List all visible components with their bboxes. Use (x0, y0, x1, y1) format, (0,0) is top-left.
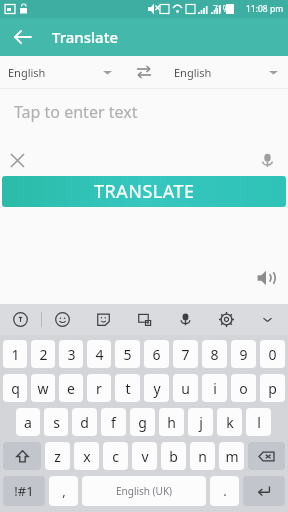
staticText: 7 (181, 345, 190, 364)
button[interactable]: e (59, 374, 83, 402)
staticText: 0 (268, 345, 277, 364)
button[interactable]: Back (6, 21, 38, 53)
staticText: 1 (11, 345, 20, 364)
button[interactable]: l (246, 408, 271, 436)
button[interactable]: 4 (87, 340, 111, 368)
staticText: 2 (39, 345, 48, 364)
button[interactable]: k (217, 408, 242, 436)
button[interactable]: u (173, 374, 198, 402)
staticText: b (169, 447, 178, 466)
button[interactable]: Tap to enter text (0, 89, 288, 144)
button[interactable]: z (45, 442, 70, 470)
staticText: !#1 (14, 482, 34, 500)
button[interactable]: 3 (59, 340, 83, 368)
button[interactable]: Voice input (250, 144, 284, 176)
button[interactable]: . (210, 476, 239, 506)
staticText: h (167, 413, 176, 432)
button[interactable]: Translate keyboard (0, 304, 41, 335)
button[interactable]: Play translation (250, 262, 282, 294)
staticText: English (UK) (116, 484, 173, 498)
button[interactable]: 2 (31, 340, 55, 368)
staticText: x (83, 447, 91, 466)
button[interactable]: GIF (124, 304, 165, 335)
staticText: r (96, 379, 102, 398)
button[interactable]: 0 (260, 340, 285, 368)
staticText: f (111, 413, 116, 432)
button[interactable]: w (31, 374, 55, 402)
staticText: Translate (52, 27, 118, 47)
staticText: m (225, 447, 239, 466)
button[interactable]: p (260, 374, 285, 402)
button[interactable]: Swap languages (122, 56, 166, 88)
button[interactable]: y (144, 374, 169, 402)
staticText: English (8, 65, 46, 80)
staticText: English (174, 65, 212, 80)
button[interactable]: 5 (115, 340, 140, 368)
button[interactable]: Voice typing (165, 304, 206, 335)
button[interactable]: 8 (202, 340, 227, 368)
staticText: z (54, 447, 61, 466)
staticText: 4 (95, 345, 104, 364)
button[interactable]: i (202, 374, 227, 402)
button[interactable]: Enter (243, 476, 285, 506)
button[interactable]: x (74, 442, 99, 470)
button[interactable]: r (87, 374, 111, 402)
button[interactable]: , (49, 476, 78, 506)
button[interactable]: m (219, 442, 244, 470)
button[interactable]: h (159, 408, 184, 436)
button[interactable]: Clear (0, 144, 34, 176)
button[interactable]: Settings (206, 304, 247, 335)
staticText: n (198, 447, 207, 466)
staticText: p (268, 379, 277, 398)
button[interactable]: o (231, 374, 256, 402)
button[interactable]: English (UK) (82, 476, 206, 506)
button[interactable]: Emoji (42, 304, 83, 335)
button[interactable]: n (190, 442, 215, 470)
button[interactable]: f (101, 408, 126, 436)
button[interactable]: TRANSLATE (2, 176, 286, 207)
staticText: c (112, 447, 119, 466)
button[interactable]: q (3, 374, 27, 402)
staticText: k (226, 413, 234, 432)
button[interactable]: Backspace (248, 442, 285, 470)
staticText: q (11, 379, 20, 398)
staticText: d (80, 413, 89, 432)
button[interactable]: !#1 (3, 476, 45, 506)
button[interactable]: j (188, 408, 213, 436)
staticText: 9 (239, 345, 248, 364)
staticText: s (53, 413, 60, 432)
staticText: a (24, 413, 32, 432)
staticText: 11:08 pm (246, 3, 284, 15)
staticText: i (213, 379, 217, 398)
staticText: l (257, 413, 261, 432)
staticText: 5 (123, 345, 132, 364)
button[interactable]: English (0, 56, 122, 88)
button[interactable]: 6 (144, 340, 169, 368)
button[interactable]: a (16, 408, 40, 436)
button[interactable]: More (247, 304, 288, 335)
button[interactable]: Shift (3, 442, 41, 470)
button[interactable]: d (72, 408, 97, 436)
staticText: g (138, 413, 147, 432)
staticText: y (153, 379, 161, 398)
staticText: TRANSLATE (94, 179, 195, 204)
staticText: o (239, 379, 248, 398)
staticText: . (223, 482, 227, 500)
staticText: 6 (152, 345, 161, 364)
staticText: u (181, 379, 190, 398)
button[interactable]: t (115, 374, 140, 402)
button[interactable]: 1 (3, 340, 27, 368)
staticText: 3 (67, 345, 76, 364)
button[interactable]: b (161, 442, 186, 470)
button[interactable]: English (166, 56, 288, 88)
button[interactable]: g (130, 408, 155, 436)
button[interactable]: 9 (231, 340, 256, 368)
button[interactable]: v (132, 442, 157, 470)
staticText: t (125, 379, 131, 398)
staticText: Tap to enter text (14, 101, 138, 123)
button[interactable]: 7 (173, 340, 198, 368)
staticText: j (199, 413, 203, 432)
button[interactable]: c (103, 442, 128, 470)
button[interactable]: s (44, 408, 68, 436)
button[interactable]: Stickers (83, 304, 124, 335)
